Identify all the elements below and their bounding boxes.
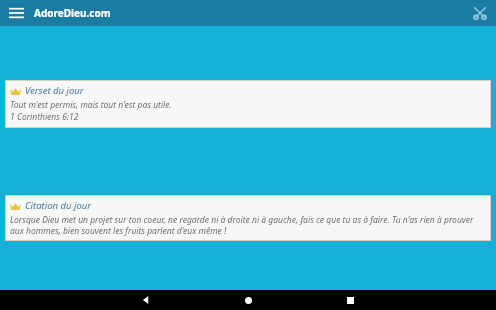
button[interactable]: Mute notifications: [471, 4, 489, 22]
staticText: Verset du jour: [25, 84, 84, 97]
staticText: Lorsque Dieu met un projet sur ton coeur…: [10, 214, 485, 236]
button[interactable]: Citation du jour: [5, 195, 491, 241]
button[interactable]: Home: [218, 290, 278, 310]
button[interactable]: Verset du jour: [5, 80, 491, 128]
button[interactable]: Recent apps: [278, 290, 423, 310]
staticText: Citation du jour: [25, 199, 92, 212]
staticText: Tout m'est permis, mais tout n'est pas u…: [10, 99, 172, 111]
button[interactable]: Open navigation menu: [7, 4, 25, 22]
button[interactable]: Back: [73, 290, 218, 310]
staticText: 1 Corinthiens 6:12: [10, 111, 79, 123]
staticText: AdoreDieu.com: [34, 6, 111, 20]
